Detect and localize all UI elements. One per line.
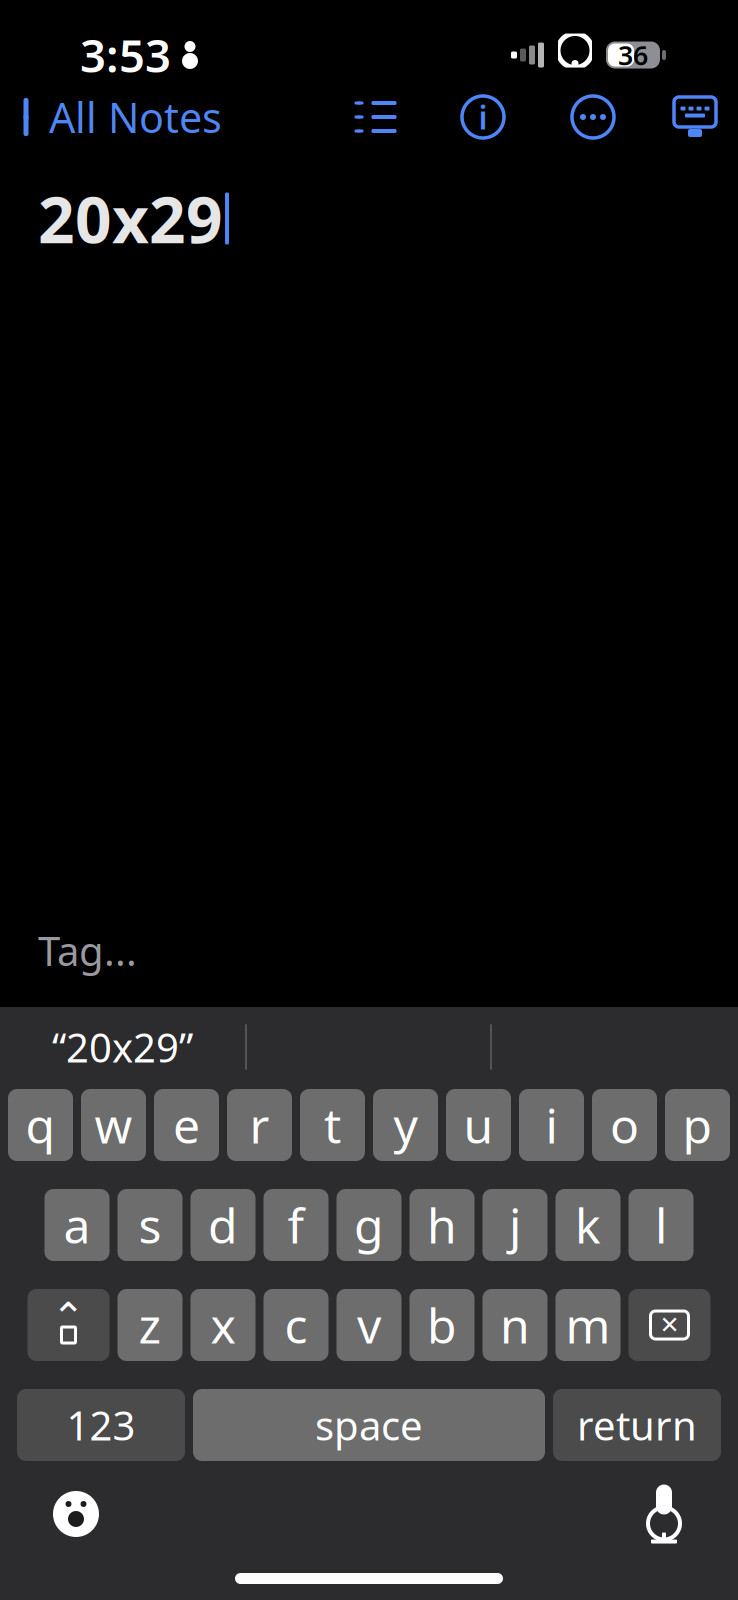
button[interactable]: r	[227, 1089, 292, 1161]
button[interactable]: i	[519, 1089, 584, 1161]
staticText: a	[63, 1193, 90, 1257]
staticText: p	[682, 1093, 712, 1157]
button[interactable]: e	[154, 1089, 219, 1161]
staticText: m	[565, 1293, 610, 1357]
staticText: ✕	[659, 1311, 679, 1339]
button[interactable]: l	[628, 1189, 693, 1261]
button[interactable]: Info	[454, 94, 512, 140]
staticText: f	[287, 1193, 304, 1257]
button[interactable]: w	[81, 1089, 146, 1161]
button[interactable]: Hide Keyboard	[672, 95, 738, 139]
staticText: t	[324, 1093, 341, 1157]
staticText: j	[509, 1193, 521, 1257]
button[interactable]: z	[117, 1289, 182, 1361]
button[interactable]: space	[193, 1389, 545, 1461]
staticText: n	[500, 1293, 530, 1357]
button[interactable]: u	[446, 1089, 511, 1161]
button[interactable]: f	[263, 1189, 328, 1261]
staticText: i	[478, 96, 487, 138]
staticText: y	[393, 1093, 417, 1157]
button[interactable]: Checklist	[342, 98, 408, 136]
button[interactable]: “20x29”	[0, 1014, 245, 1080]
button[interactable]: 123	[17, 1389, 185, 1461]
staticText: 3:53	[80, 25, 171, 85]
staticText: ⌃	[51, 1294, 85, 1340]
staticText: return	[577, 1398, 697, 1451]
button[interactable]: t	[300, 1089, 365, 1161]
staticText: 20x29	[38, 176, 223, 261]
staticText: q	[25, 1093, 55, 1157]
staticText: Tag...	[38, 924, 137, 977]
staticText: “20x29”	[52, 1020, 193, 1073]
staticText: u	[463, 1093, 493, 1157]
button[interactable]: Dictate	[644, 1483, 738, 1545]
button[interactable]: return	[553, 1389, 721, 1461]
staticText: o	[610, 1093, 639, 1157]
button[interactable]: h	[409, 1189, 474, 1261]
button[interactable]: v	[336, 1289, 401, 1361]
staticText: e	[173, 1093, 200, 1157]
staticText: v	[357, 1293, 381, 1357]
staticText: All Notes	[49, 90, 222, 144]
staticText: 36	[618, 37, 648, 73]
staticText: l	[655, 1193, 667, 1257]
button[interactable]: o	[592, 1089, 657, 1161]
button[interactable]: All Notes	[0, 80, 222, 154]
staticText: g	[354, 1193, 384, 1257]
staticText: space	[315, 1398, 423, 1451]
staticText: d	[208, 1193, 238, 1257]
staticText: h	[427, 1193, 457, 1257]
button[interactable]: a	[44, 1189, 109, 1261]
button[interactable]: j	[482, 1189, 547, 1261]
staticText: 123	[66, 1398, 135, 1451]
button[interactable]: More	[564, 94, 622, 140]
button[interactable]: Delete	[628, 1289, 710, 1361]
button[interactable]: d	[190, 1189, 255, 1261]
staticText: c	[284, 1293, 307, 1357]
button[interactable]: q	[8, 1089, 73, 1161]
button[interactable]: n	[482, 1289, 547, 1361]
staticText: b	[427, 1293, 457, 1357]
button[interactable]: c	[263, 1289, 328, 1361]
button[interactable]: Shift	[27, 1289, 109, 1361]
button[interactable]: Emoji	[0, 1490, 100, 1538]
staticText: s	[138, 1193, 161, 1257]
staticText: k	[575, 1193, 601, 1257]
staticText: w	[94, 1093, 132, 1157]
button[interactable]: k	[555, 1189, 620, 1261]
staticText: i	[545, 1093, 557, 1157]
button[interactable]: b	[409, 1289, 474, 1361]
staticText: z	[138, 1293, 161, 1357]
staticText: x	[210, 1293, 235, 1357]
button[interactable]: g	[336, 1189, 401, 1261]
button[interactable]: s	[117, 1189, 182, 1261]
button[interactable]: p	[665, 1089, 730, 1161]
button[interactable]: x	[190, 1289, 255, 1361]
button[interactable]: y	[373, 1089, 438, 1161]
button[interactable]: m	[555, 1289, 620, 1361]
staticText: r	[249, 1093, 269, 1157]
